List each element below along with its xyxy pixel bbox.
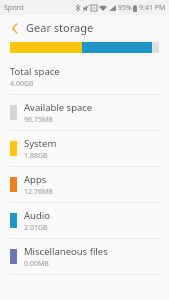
staticText: Miscellaneous files: [24, 245, 108, 258]
staticText: System: [24, 137, 57, 150]
staticText: 96.75MB: [24, 115, 53, 125]
staticText: 95%: [118, 3, 132, 13]
button[interactable]: Apps: [0, 167, 169, 203]
button[interactable]: Total space: [0, 59, 169, 95]
staticText: Apps: [24, 173, 47, 186]
staticText: 0.00MB: [24, 259, 49, 269]
button[interactable]: Back: [6, 20, 22, 36]
staticText: Sprint: [4, 3, 24, 13]
staticText: Total space: [10, 65, 60, 78]
button[interactable]: Audio: [0, 203, 169, 239]
staticText: Audio: [24, 209, 50, 222]
staticText: 12.76MB: [24, 187, 53, 197]
staticText: Gear storage: [26, 20, 94, 35]
button[interactable]: Available space: [0, 95, 169, 131]
staticText: 9:41 PM: [139, 3, 166, 13]
staticText: Available space: [24, 101, 93, 114]
staticText: 2.01GB: [24, 223, 48, 233]
button[interactable]: Miscellaneous files: [0, 239, 169, 275]
button[interactable]: System: [0, 131, 169, 167]
staticText: 1.88GB: [24, 151, 48, 161]
staticText: 4.00GB: [10, 79, 34, 89]
